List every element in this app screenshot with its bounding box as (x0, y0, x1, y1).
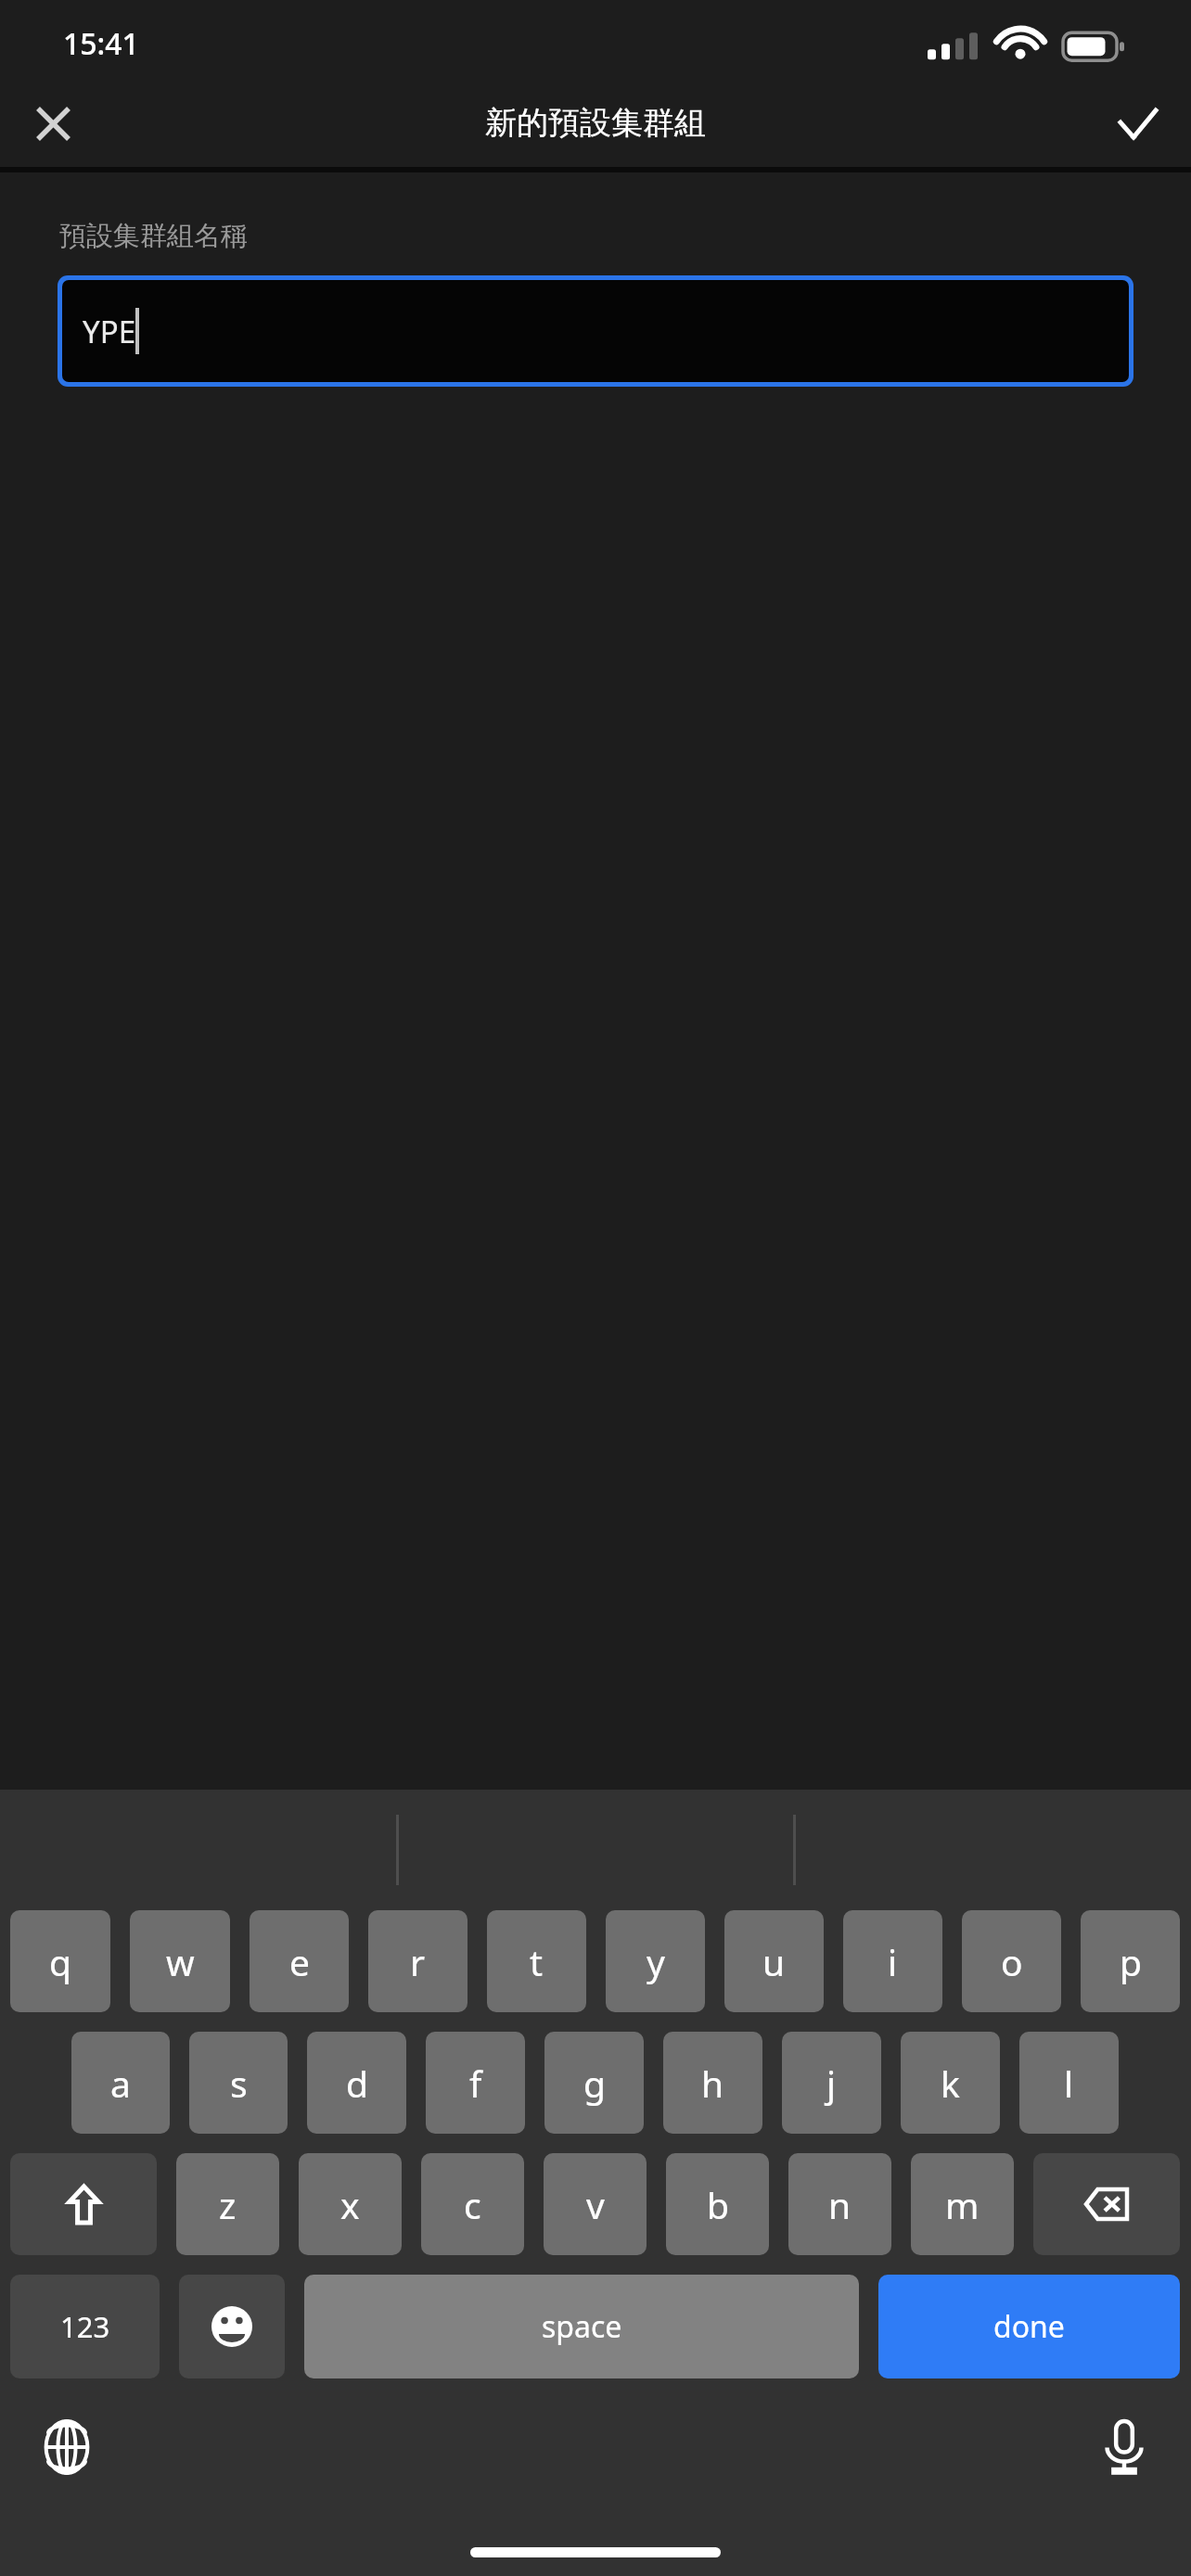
staticText: 預設集群組名稱 (59, 219, 248, 253)
staticText: j (826, 2059, 837, 2108)
button[interactable]: o (962, 1910, 1061, 2012)
button[interactable]: l (1019, 2032, 1119, 2134)
staticText: v (586, 2180, 605, 2229)
staticText: m (945, 2180, 980, 2229)
button[interactable]: y (606, 1910, 705, 2012)
button[interactable]: Dictation (1082, 2404, 1167, 2490)
button[interactable]: Close (11, 82, 95, 165)
button[interactable]: i (843, 1910, 942, 2012)
button[interactable]: u (724, 1910, 824, 2012)
staticText: c (464, 2180, 481, 2229)
button[interactable]: m (911, 2153, 1014, 2255)
button[interactable]: k (901, 2032, 1000, 2134)
button[interactable]: Backspace (1033, 2153, 1180, 2255)
button[interactable]: Emoji keyboard (179, 2275, 285, 2378)
button[interactable]: x (299, 2153, 402, 2255)
button[interactable]: f (426, 2032, 525, 2134)
button[interactable]: d (307, 2032, 406, 2134)
staticText: k (941, 2059, 960, 2108)
staticText: q (49, 1937, 71, 1986)
staticText: h (701, 2059, 724, 2108)
button[interactable]: j (782, 2032, 881, 2134)
staticText: 新的預設集群組 (485, 103, 706, 143)
button[interactable]: b (666, 2153, 769, 2255)
staticText: space (542, 2306, 622, 2347)
button[interactable]: r (368, 1910, 467, 2012)
button[interactable]: done (878, 2275, 1180, 2378)
button[interactable]: p (1081, 1910, 1180, 2012)
staticText: done (993, 2306, 1065, 2347)
staticText: g (583, 2059, 606, 2108)
staticText: 15:41 (63, 23, 139, 64)
staticText: r (410, 1937, 426, 1986)
button[interactable]: w (130, 1910, 230, 2012)
staticText: y (647, 1937, 665, 1986)
staticText: i (888, 1937, 898, 1986)
button[interactable]: c (421, 2153, 524, 2255)
staticText: w (166, 1937, 195, 1986)
button[interactable]: t (487, 1910, 586, 2012)
staticText: b (707, 2180, 729, 2229)
button[interactable]: e (250, 1910, 349, 2012)
button[interactable]: q (10, 1910, 110, 2012)
staticText: z (219, 2180, 237, 2229)
button[interactable]: s (189, 2032, 288, 2134)
button[interactable]: z (176, 2153, 279, 2255)
staticText: YPE (83, 311, 135, 352)
staticText: t (530, 1937, 544, 1986)
staticText: p (1120, 1937, 1142, 1986)
button[interactable]: Shift (10, 2153, 157, 2255)
staticText: o (1001, 1937, 1023, 1986)
button[interactable]: h (663, 2032, 762, 2134)
button[interactable]: Next keyboard (24, 2404, 109, 2490)
staticText: u (762, 1937, 786, 1986)
button[interactable]: g (544, 2032, 644, 2134)
staticText: f (469, 2059, 482, 2108)
staticText: s (230, 2059, 248, 2108)
button[interactable]: YPE (62, 280, 1129, 382)
staticText: d (346, 2059, 368, 2108)
button[interactable]: 123 (10, 2275, 160, 2378)
staticText: l (1064, 2059, 1074, 2108)
staticText: e (289, 1937, 310, 1986)
staticText: 123 (60, 2307, 110, 2346)
button[interactable]: v (544, 2153, 647, 2255)
button[interactable]: a (71, 2032, 170, 2134)
staticText: a (110, 2059, 131, 2108)
staticText: n (828, 2180, 852, 2229)
staticText: x (340, 2180, 360, 2229)
button[interactable]: Confirm (1096, 82, 1180, 165)
button[interactable]: n (788, 2153, 891, 2255)
button[interactable]: space (304, 2275, 859, 2378)
